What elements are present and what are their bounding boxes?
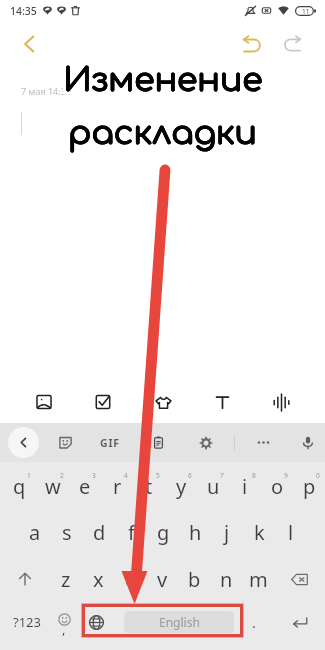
staticText: u <box>207 473 220 500</box>
staticText: Изменение <box>63 62 263 99</box>
staticText: 1 <box>27 471 31 480</box>
staticText: 3 <box>92 471 96 480</box>
staticText: d <box>93 519 106 546</box>
button[interactable]: Style <box>148 387 178 417</box>
button[interactable]: Period <box>240 600 268 644</box>
button[interactable]: x <box>82 558 114 600</box>
staticText: j <box>224 519 230 546</box>
button[interactable]: z <box>50 558 82 600</box>
button[interactable]: Text format <box>207 387 237 417</box>
staticText: раскладки <box>68 115 257 152</box>
staticText: b <box>188 566 201 593</box>
staticText: Изменение <box>66 62 266 99</box>
staticText: p <box>303 473 316 500</box>
button[interactable]: t <box>133 467 165 503</box>
staticText: раскладки <box>68 112 257 149</box>
button[interactable]: l <box>275 511 307 553</box>
button[interactable]: Checklist <box>88 387 118 417</box>
button[interactable]: c <box>114 558 146 600</box>
button[interactable]: n <box>210 558 242 600</box>
staticText: i <box>242 473 248 500</box>
staticText: 4 <box>124 471 128 480</box>
staticText: 0 <box>316 471 320 480</box>
button[interactable]: Enter <box>280 600 320 644</box>
staticText: Изменение <box>63 62 263 99</box>
staticText: Изменение <box>60 59 260 96</box>
staticText: раскладки <box>68 115 257 152</box>
staticText: 14:35 <box>10 4 37 18</box>
button[interactable]: u <box>197 467 229 503</box>
staticText: Изменение <box>63 59 263 96</box>
button[interactable]: Voice input <box>294 429 321 456</box>
staticText: Изменение <box>60 65 260 102</box>
staticText: 8 <box>252 471 256 480</box>
staticText: раскладки <box>65 112 254 149</box>
button[interactable]: Keyboard settings <box>192 429 219 456</box>
button[interactable]: Shift <box>0 558 50 600</box>
staticText: . <box>252 613 256 632</box>
staticText: Изменение <box>63 62 263 99</box>
staticText: Изменение <box>60 62 260 99</box>
staticText: раскладки <box>71 115 260 152</box>
button[interactable]: Backspace <box>274 558 325 600</box>
button[interactable]: y <box>165 467 197 503</box>
staticText: раскладки <box>68 115 257 152</box>
button[interactable]: Redo <box>277 28 308 59</box>
button[interactable]: Audio <box>266 387 296 417</box>
staticText: w <box>45 473 61 500</box>
staticText: t <box>145 473 153 500</box>
button[interactable]: Back <box>13 28 45 60</box>
button[interactable]: k <box>243 511 275 553</box>
button[interactable]: English <box>124 611 234 633</box>
staticText: n <box>220 566 233 593</box>
button[interactable]: h <box>179 511 211 553</box>
staticText: r <box>113 473 122 500</box>
staticText: 7 <box>220 471 224 480</box>
button[interactable]: f <box>115 511 147 553</box>
staticText: раскладки <box>68 118 257 155</box>
staticText: 7 мая 14:32 <box>21 85 71 97</box>
button[interactable]: Stickers <box>52 429 79 456</box>
button[interactable]: d <box>83 511 115 553</box>
staticText: h <box>189 519 202 546</box>
staticText: k <box>254 519 265 546</box>
button[interactable]: r <box>101 467 133 503</box>
staticText: GIF <box>100 436 120 450</box>
staticText: e <box>79 473 91 500</box>
button[interactable]: j <box>211 511 243 553</box>
button[interactable]: Emoji and comma <box>50 600 78 644</box>
button[interactable]: v <box>146 558 178 600</box>
button[interactable]: i <box>229 467 261 503</box>
button[interactable]: e <box>69 467 101 503</box>
button[interactable]: Change keyboard language <box>82 600 110 644</box>
button[interactable]: Clipboard <box>145 429 172 456</box>
button[interactable]: Undo <box>236 28 267 59</box>
button[interactable]: GIF <box>96 429 124 457</box>
button[interactable]: m <box>242 558 274 600</box>
staticText: y <box>176 473 187 500</box>
button[interactable]: Insert image <box>29 387 59 417</box>
button[interactable]: p <box>293 467 325 503</box>
staticText: Изменение <box>66 59 266 96</box>
staticText: 9 <box>284 471 288 480</box>
button[interactable]: b <box>178 558 210 600</box>
button[interactable]: ?123 <box>6 600 48 644</box>
staticText: раскладки <box>71 112 260 149</box>
button[interactable]: More options <box>250 429 277 456</box>
staticText: раскладки <box>68 115 257 152</box>
staticText: a <box>29 519 41 546</box>
button[interactable]: a <box>18 511 51 553</box>
staticText: m <box>249 566 268 593</box>
staticText: раскладки <box>65 115 254 152</box>
button[interactable]: g <box>147 511 179 553</box>
staticText: 6 <box>188 471 192 480</box>
button[interactable]: q <box>3 467 36 503</box>
button[interactable]: Close keyboard toolbar <box>8 427 39 458</box>
button[interactable]: o <box>261 467 293 503</box>
button[interactable]: s <box>51 511 83 553</box>
button[interactable]: w <box>36 467 69 503</box>
staticText: Изменение <box>66 65 266 102</box>
staticText: 2 <box>60 471 64 480</box>
staticText: s <box>62 519 72 546</box>
staticText: , <box>62 620 66 638</box>
